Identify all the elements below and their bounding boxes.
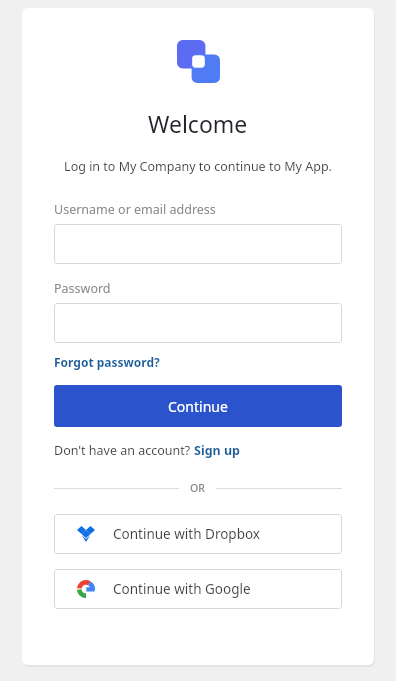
staticText: OR	[190, 481, 205, 495]
staticText: Welcome	[148, 108, 248, 139]
button[interactable]: Password input	[54, 303, 342, 343]
button[interactable]: Continue	[54, 385, 342, 427]
button[interactable]: Username or email address input	[54, 224, 342, 264]
staticText: Username or email address	[54, 201, 216, 218]
staticText: Continue with Dropbox	[113, 525, 261, 543]
staticText: Continue with Google	[113, 580, 251, 598]
staticText: Don't have an account?	[54, 442, 194, 459]
staticText: Forgot password?	[54, 354, 160, 370]
staticText: Continue	[168, 397, 228, 416]
button[interactable]: Sign up	[194, 442, 240, 459]
staticText: Sign up	[194, 442, 240, 459]
button[interactable]: Continue with Google	[54, 569, 342, 609]
staticText: Log in to My Company to continue to My A…	[64, 158, 332, 175]
button[interactable]: Continue with Dropbox	[54, 514, 342, 554]
button[interactable]: Forgot password?	[54, 354, 160, 370]
staticText: Password	[54, 280, 111, 297]
